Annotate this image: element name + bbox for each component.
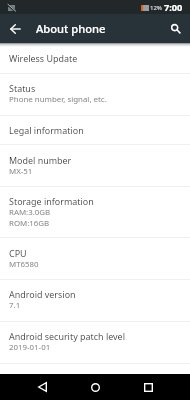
- button[interactable]: Legal information: [0, 116, 190, 144]
- staticText: 2019-01-01: [9, 342, 51, 353]
- button[interactable]: Storage information: [0, 187, 190, 237]
- button[interactable]: Recent apps: [132, 374, 164, 400]
- button[interactable]: Wireless Update: [0, 47, 190, 73]
- staticText: ROM:16GB: [9, 218, 50, 229]
- staticText: Wireless Update: [9, 52, 78, 64]
- staticText: 7.1: [9, 300, 21, 311]
- staticText: RAM:3.0GB: [9, 207, 51, 218]
- staticText: 7:00: [164, 1, 183, 14]
- staticText: Phone number, signal, etc.: [9, 94, 107, 105]
- staticText: Android security patch level: [9, 330, 125, 342]
- staticText: CPU: [9, 247, 27, 259]
- button[interactable]: Back: [26, 374, 58, 400]
- button[interactable]: Android version: [0, 280, 190, 321]
- staticText: Status: [9, 82, 36, 94]
- staticText: 12%: [150, 4, 162, 12]
- staticText: Storage information: [9, 195, 94, 207]
- staticText: Legal information: [9, 124, 84, 136]
- staticText: MT6580: [9, 259, 39, 270]
- button[interactable]: Android security patch level: [0, 322, 190, 363]
- button[interactable]: Search: [161, 14, 190, 43]
- button[interactable]: Status: [0, 74, 190, 115]
- staticText: About phone: [36, 21, 106, 36]
- button[interactable]: Navigate up: [0, 14, 29, 43]
- button[interactable]: Home: [79, 374, 111, 400]
- staticText: MX-51: [9, 166, 33, 177]
- staticText: Model number: [9, 154, 72, 166]
- button[interactable]: Model number: [0, 145, 190, 186]
- button[interactable]: CPU: [0, 238, 190, 279]
- staticText: Android version: [9, 288, 76, 300]
